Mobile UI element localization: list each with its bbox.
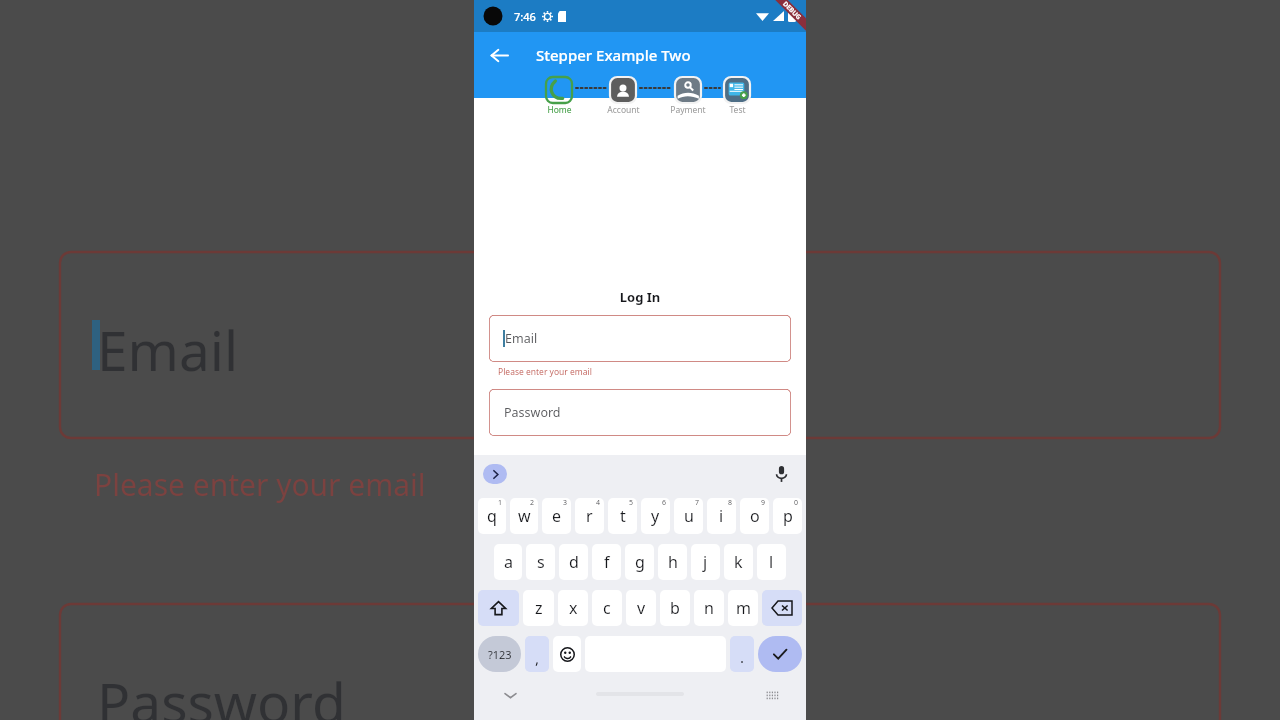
button[interactable]: Account bbox=[593, 77, 653, 116]
staticText: 2 bbox=[530, 498, 535, 508]
staticText: DEBUG bbox=[781, 0, 804, 22]
staticText: c bbox=[603, 597, 611, 619]
button[interactable]: Test bbox=[707, 77, 767, 116]
button[interactable]: n bbox=[694, 590, 724, 626]
button[interactable]: Emoji bbox=[553, 636, 581, 672]
staticText: Password bbox=[504, 404, 561, 421]
staticText: Test bbox=[729, 104, 746, 116]
staticText: n bbox=[704, 597, 714, 619]
staticText: y bbox=[651, 505, 660, 527]
button[interactable]: x bbox=[558, 590, 588, 626]
staticText: Payment bbox=[670, 104, 706, 116]
staticText: Email bbox=[505, 330, 538, 347]
staticText: w bbox=[518, 505, 531, 527]
button[interactable]: Change keyboard bbox=[762, 685, 782, 705]
button[interactable]: Shift bbox=[478, 590, 519, 626]
staticText: 8 bbox=[728, 498, 733, 508]
button[interactable]: v bbox=[626, 590, 656, 626]
staticText: o bbox=[750, 505, 760, 527]
button[interactable]: y bbox=[641, 498, 670, 534]
staticText: t bbox=[620, 505, 626, 527]
button[interactable]: g bbox=[625, 544, 654, 580]
staticText: s bbox=[537, 551, 545, 573]
staticText: 1 bbox=[498, 498, 503, 508]
staticText: 6 bbox=[662, 498, 667, 508]
staticText: Please enter your email bbox=[498, 366, 592, 378]
staticText: Email bbox=[97, 312, 239, 387]
button[interactable]: s bbox=[526, 544, 555, 580]
staticText: l bbox=[769, 551, 774, 573]
staticText: q bbox=[487, 505, 497, 527]
staticText: k bbox=[734, 551, 743, 573]
staticText: 3 bbox=[563, 498, 568, 508]
staticText: 0 bbox=[794, 498, 799, 508]
button[interactable]: w bbox=[510, 498, 538, 534]
staticText: g bbox=[635, 551, 645, 573]
button[interactable]: p bbox=[773, 498, 802, 534]
button[interactable]: h bbox=[658, 544, 687, 580]
button[interactable]: . bbox=[730, 636, 754, 672]
staticText: 7:46 bbox=[514, 9, 536, 24]
staticText: Account bbox=[607, 104, 640, 116]
button[interactable]: More suggestions bbox=[483, 464, 507, 484]
staticText: a bbox=[504, 551, 513, 573]
staticText: 7 bbox=[695, 498, 700, 508]
staticText: Stepper Example Two bbox=[536, 45, 691, 65]
button[interactable]: u bbox=[674, 498, 703, 534]
staticText: x bbox=[569, 597, 578, 619]
button[interactable]: Payment bbox=[658, 77, 718, 116]
button[interactable]: Home bbox=[529, 77, 589, 116]
button[interactable]: l bbox=[757, 544, 786, 580]
button[interactable]: b bbox=[660, 590, 690, 626]
button[interactable]: i bbox=[707, 498, 736, 534]
staticText: Please enter your email bbox=[94, 464, 426, 505]
staticText: Log In bbox=[474, 288, 806, 306]
staticText: r bbox=[586, 505, 593, 527]
staticText: j bbox=[703, 551, 708, 573]
staticText: 4 bbox=[596, 498, 601, 508]
button[interactable]: a bbox=[494, 544, 522, 580]
button[interactable]: ?123 bbox=[478, 636, 521, 672]
button[interactable]: c bbox=[592, 590, 622, 626]
button[interactable]: o bbox=[740, 498, 769, 534]
button[interactable]: r bbox=[575, 498, 604, 534]
staticText: Password bbox=[97, 664, 346, 720]
button[interactable]: z bbox=[523, 590, 554, 626]
button[interactable]: Backspace bbox=[762, 590, 802, 626]
button[interactable]: j bbox=[691, 544, 720, 580]
staticText: b bbox=[670, 597, 680, 619]
staticText: f bbox=[604, 551, 610, 573]
button[interactable]: e bbox=[542, 498, 571, 534]
button[interactable]: Password bbox=[489, 389, 791, 436]
button[interactable]: Voice input bbox=[770, 463, 792, 485]
button[interactable]: d bbox=[559, 544, 588, 580]
button[interactable]: Done bbox=[758, 636, 802, 672]
staticText: Home bbox=[547, 104, 572, 116]
button[interactable]: Email bbox=[489, 315, 791, 362]
staticText: z bbox=[535, 597, 543, 619]
staticText: v bbox=[637, 597, 646, 619]
button[interactable]: Back bbox=[482, 38, 516, 72]
staticText: 9 bbox=[761, 498, 766, 508]
button[interactable]: q bbox=[478, 498, 506, 534]
button[interactable]: k bbox=[724, 544, 753, 580]
staticText: i bbox=[719, 505, 724, 527]
staticText: d bbox=[569, 551, 579, 573]
staticText: h bbox=[668, 551, 678, 573]
button[interactable]: t bbox=[608, 498, 637, 534]
staticText: 5 bbox=[629, 498, 634, 508]
staticText: e bbox=[552, 505, 562, 527]
staticText: m bbox=[736, 597, 751, 619]
button[interactable]: m bbox=[728, 590, 758, 626]
staticText: ?123 bbox=[488, 647, 512, 662]
button[interactable]: , bbox=[525, 636, 549, 672]
staticText: u bbox=[684, 505, 694, 527]
button[interactable]: f bbox=[592, 544, 621, 580]
staticText: p bbox=[783, 505, 793, 527]
staticText: , bbox=[535, 648, 540, 668]
button[interactable]: Hide keyboard bbox=[500, 685, 520, 705]
staticText: . bbox=[740, 647, 745, 667]
